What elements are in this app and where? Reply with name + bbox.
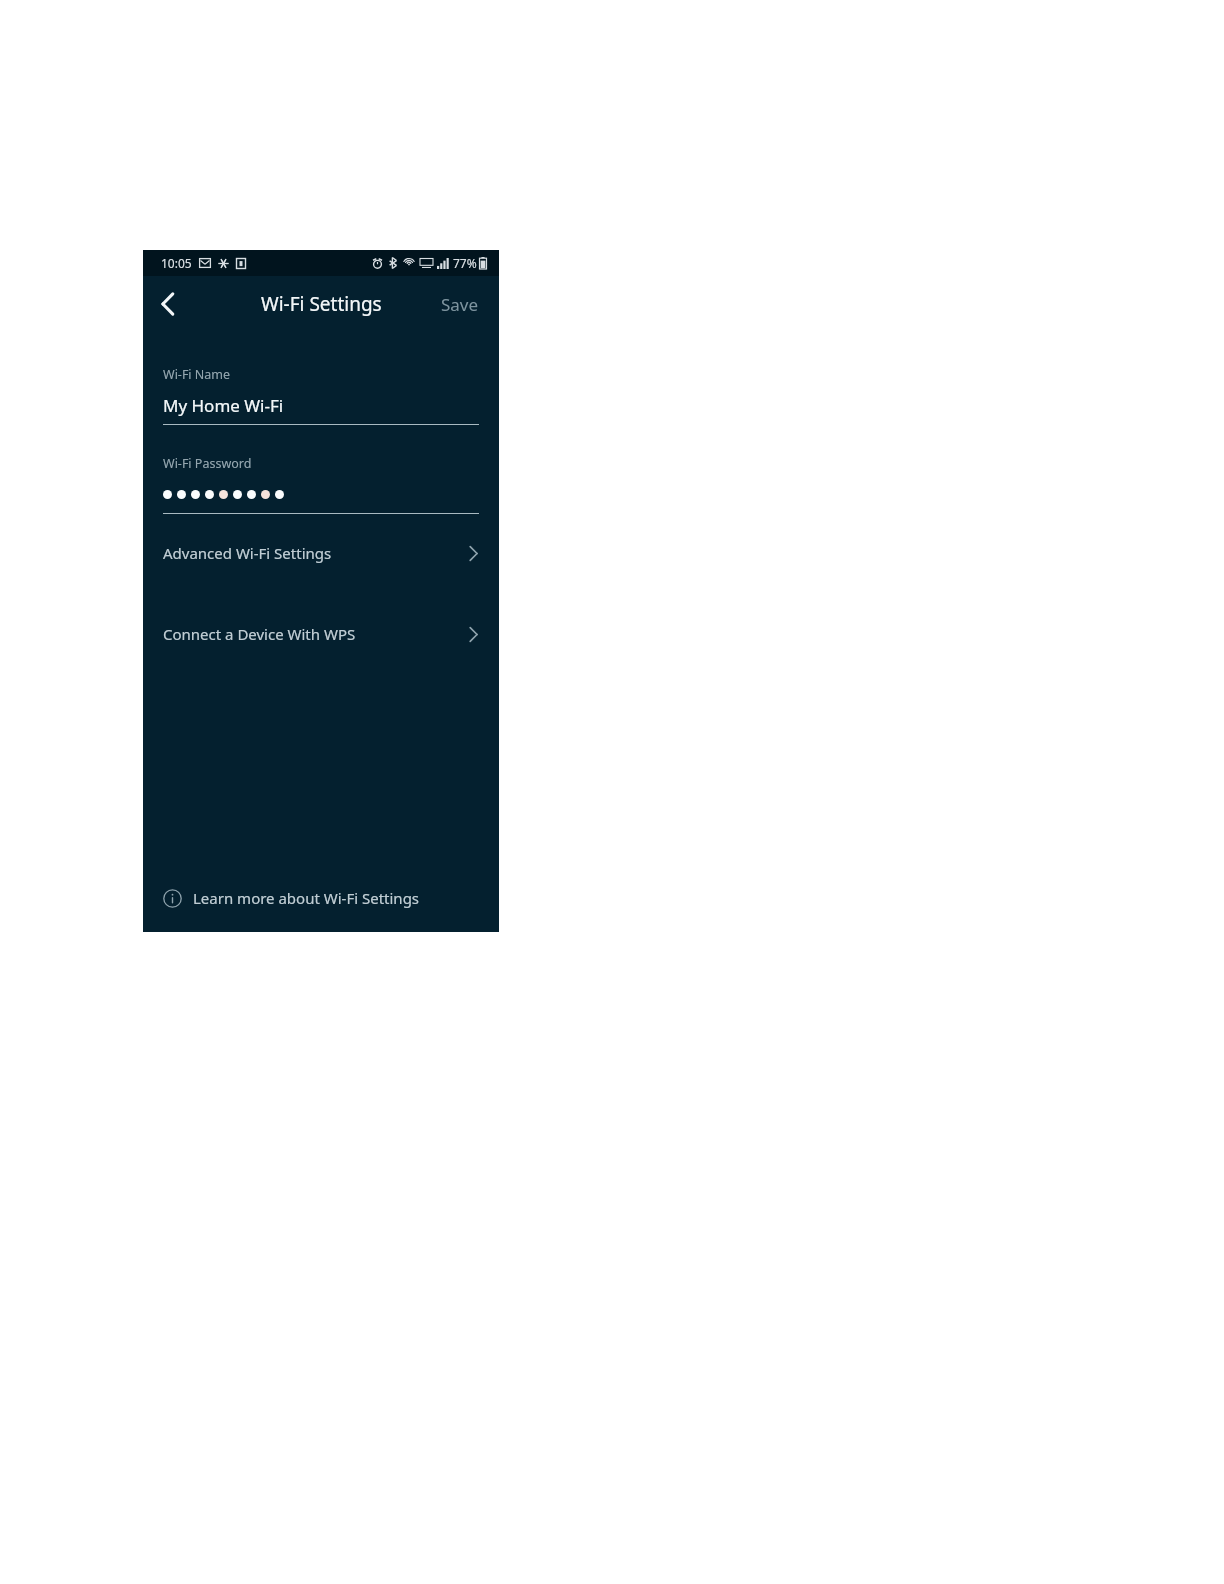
button[interactable]: Save [421,279,499,330]
staticText: Wi-Fi Password [163,455,252,472]
staticText: Save [441,293,479,316]
staticText: My Home Wi-Fi [163,394,284,417]
button[interactable]: Back [143,279,193,329]
staticText: Wi-Fi Name [163,366,231,383]
button[interactable]: Learn more about Wi-Fi Settings [143,882,499,914]
staticText: 10:05 [161,255,192,271]
button[interactable]: Advanced Wi-Fi Settings [143,536,499,570]
staticText: 77% [453,255,477,271]
button[interactable]: Connect a Device With WPS [143,617,499,651]
staticText: Connect a Device With WPS [163,624,356,644]
button[interactable]: Wi-Fi Password [143,455,499,514]
staticText: Wi-Fi Settings [261,291,382,317]
staticText: Learn more about Wi-Fi Settings [193,888,420,908]
staticText: Advanced Wi-Fi Settings [163,543,332,563]
button[interactable]: Wi-Fi Name [143,366,499,425]
